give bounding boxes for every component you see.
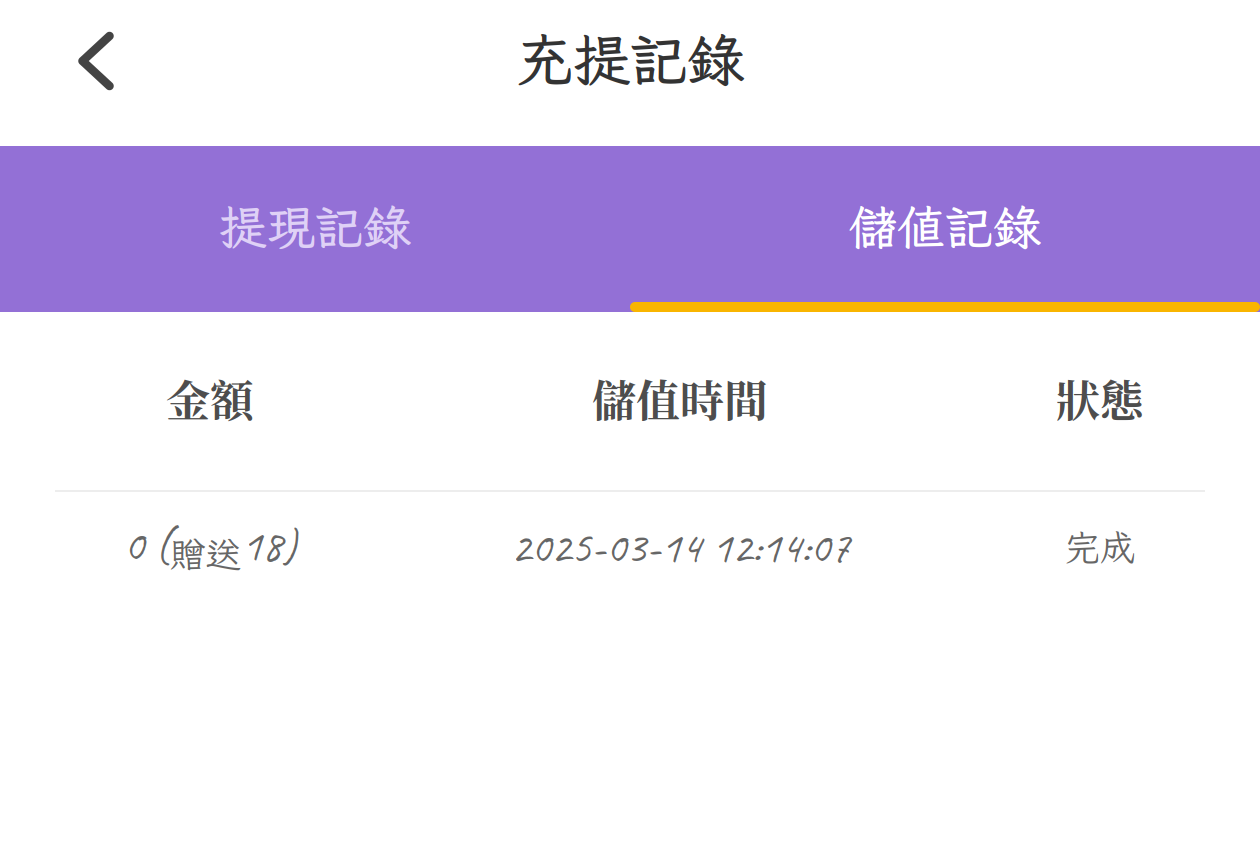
button[interactable]: Back bbox=[0, 0, 210, 118]
staticText: 提現記錄 bbox=[219, 195, 411, 258]
staticText: 狀態 bbox=[1056, 366, 1144, 430]
staticText: 0 (贈送18) bbox=[123, 517, 296, 577]
button[interactable]: 提現記錄 bbox=[0, 146, 630, 307]
staticText: 2025-03-14 12:14:07 bbox=[510, 518, 849, 575]
staticText: 金額 bbox=[166, 366, 254, 430]
staticText: 儲值時間 bbox=[592, 366, 768, 430]
button[interactable]: 儲值記錄 bbox=[630, 146, 1260, 307]
staticText: 儲值記錄 bbox=[849, 195, 1041, 258]
staticText: 完成 bbox=[1064, 523, 1136, 571]
button[interactable]: 0 (贈送18) bbox=[0, 492, 1260, 602]
staticText: 充提記錄 bbox=[516, 21, 744, 97]
